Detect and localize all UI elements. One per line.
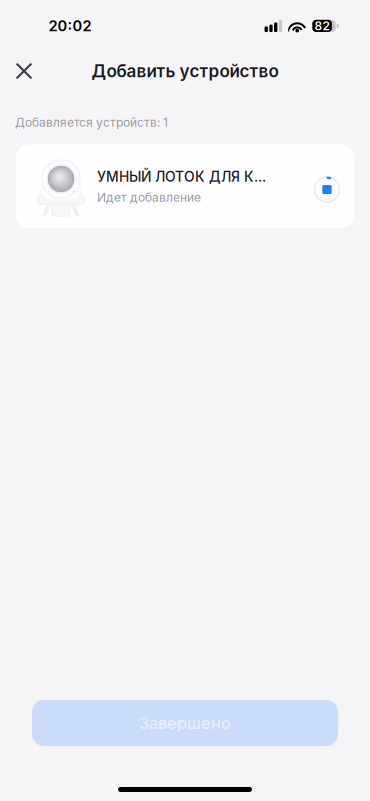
staticText: Завершено <box>139 713 231 733</box>
button[interactable]: Завершено <box>32 700 338 746</box>
button[interactable]: УМНЫЙ ЛОТОК ДЛЯ К... <box>16 144 354 228</box>
staticText: Добавляется устройств: 1 <box>15 115 168 129</box>
staticText: Добавить устройство <box>91 61 278 81</box>
staticText: 82 <box>315 19 330 33</box>
staticText: 20:02 <box>48 17 91 35</box>
staticText: УМНЫЙ ЛОТОК ДЛЯ К... <box>97 168 266 185</box>
button[interactable]: Закрыть <box>2 51 46 91</box>
staticText: Идет добавление <box>97 190 201 205</box>
